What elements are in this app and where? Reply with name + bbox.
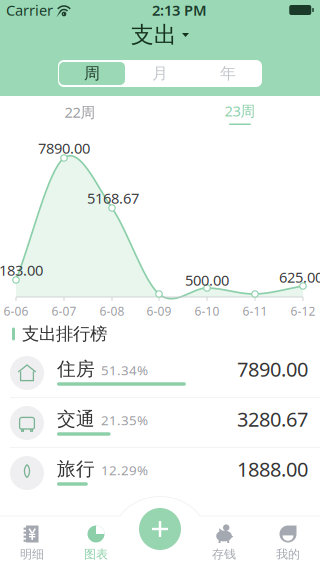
staticText: 明细	[20, 547, 44, 562]
staticText: Carrier	[6, 0, 53, 20]
button[interactable]: Add expense	[137, 506, 183, 552]
staticText: 6-08	[99, 303, 124, 319]
staticText: 6-07	[51, 303, 76, 319]
staticText: 23周	[224, 101, 255, 120]
button[interactable]: 住房	[0, 348, 320, 398]
staticText: 周	[84, 64, 100, 83]
staticText: 住房	[57, 357, 95, 380]
staticText: 6-12	[290, 303, 315, 319]
button[interactable]: 交通	[0, 398, 320, 448]
button[interactable]: 周	[58, 60, 126, 87]
staticText: 21.35%	[101, 411, 148, 429]
staticText: 12.29%	[101, 461, 148, 479]
staticText: 3280.67	[237, 406, 308, 432]
staticText: 51.34%	[101, 361, 148, 379]
staticText: 旅行	[57, 457, 95, 480]
button[interactable]: 支出	[131, 20, 189, 50]
button[interactable]: 年	[194, 60, 262, 87]
staticText: 500.00	[185, 270, 229, 290]
staticText: 2:13 PM	[152, 0, 207, 20]
button[interactable]: 23周	[160, 96, 320, 128]
button[interactable]: 存钱	[192, 516, 256, 568]
staticText: 6-06	[3, 303, 28, 319]
staticText: 支出	[131, 21, 177, 49]
staticText: 7890.00	[38, 138, 90, 158]
staticText: 存钱	[212, 547, 236, 562]
staticText: 月	[152, 64, 168, 83]
staticText: 7890.00	[237, 356, 308, 382]
staticText: 5168.67	[87, 188, 139, 208]
button[interactable]: 月	[126, 60, 194, 87]
button[interactable]: 图表	[64, 516, 128, 568]
button[interactable]: 我的	[256, 516, 320, 568]
staticText: 22周	[64, 102, 95, 122]
button[interactable]: 明细	[0, 516, 64, 568]
staticText: 年	[220, 64, 236, 83]
staticText: 1183.00	[0, 260, 43, 280]
staticText: 625.00	[279, 267, 320, 287]
staticText: 1888.00	[237, 456, 308, 482]
staticText: 交通	[57, 407, 95, 430]
staticText: 支出排行榜	[22, 323, 107, 345]
button[interactable]: 旅行	[0, 448, 320, 498]
staticText: 图表	[84, 547, 108, 562]
button[interactable]: 22周	[0, 96, 160, 128]
staticText: 6-09	[146, 303, 171, 319]
staticText: 我的	[276, 547, 300, 562]
staticText: 6-11	[242, 303, 267, 319]
staticText: 6-10	[194, 303, 219, 319]
